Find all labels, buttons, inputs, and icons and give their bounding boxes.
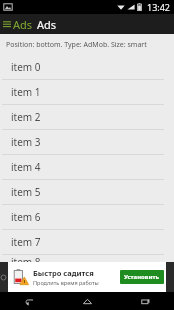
staticText: item 8 — [11, 255, 41, 262]
button[interactable]: item 5 — [0, 180, 174, 204]
button[interactable]: Установить — [120, 270, 164, 284]
button[interactable]: item 6 — [0, 205, 174, 229]
staticText: Position: bottom. Type: AdMob. Size: sma… — [6, 40, 147, 50]
staticText: Продлить время работы батареи! — [33, 279, 118, 286]
staticText: item 0 — [11, 60, 41, 74]
button[interactable]: item 0 — [0, 55, 174, 79]
button[interactable]: item 1 — [0, 80, 174, 104]
staticText: Ads — [37, 17, 57, 32]
button[interactable]: item 3 — [0, 130, 174, 154]
staticText: item 1 — [11, 85, 41, 99]
button[interactable]: Recent apps — [116, 292, 174, 310]
staticText: item 3 — [11, 135, 41, 149]
staticText: 13:42 — [147, 1, 171, 13]
staticText: item 2 — [11, 110, 41, 124]
staticText: Быстро садится батарея? — [33, 268, 118, 278]
staticText: Установить — [124, 273, 160, 281]
button[interactable]: item 7 — [0, 230, 174, 254]
button[interactable]: Быстро садится батарея? — [0, 262, 174, 292]
staticText: Ads — [13, 17, 33, 32]
staticText: item 4 — [11, 160, 41, 174]
staticText: item 5 — [11, 185, 41, 199]
staticText: item 6 — [11, 210, 41, 224]
staticText: item 7 — [11, 235, 41, 249]
button[interactable]: Back — [0, 292, 58, 310]
button[interactable]: item 8 — [0, 255, 174, 262]
button[interactable]: item 4 — [0, 155, 174, 179]
button[interactable]: Open navigation menu — [0, 14, 13, 34]
button[interactable]: item 2 — [0, 105, 174, 129]
button[interactable]: Home — [58, 292, 116, 310]
